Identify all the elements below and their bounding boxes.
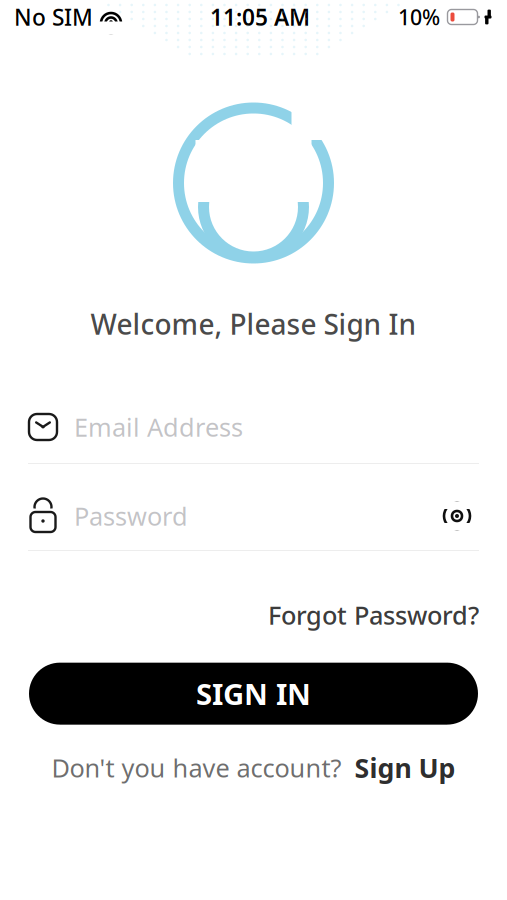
staticText: 11:05 AM xyxy=(210,2,310,32)
staticText: Welcome, Please Sign In xyxy=(90,305,416,343)
staticText: No SIM xyxy=(14,2,93,32)
staticText: Email Address xyxy=(74,410,243,444)
staticText: 10% xyxy=(398,3,440,31)
staticText: Sign Up xyxy=(354,750,455,785)
staticText: Forgot Password? xyxy=(268,598,479,632)
staticText: Password xyxy=(74,499,188,533)
button[interactable]: Forgot Password? xyxy=(268,594,479,636)
staticText: Don't you have account? xyxy=(51,751,341,784)
button[interactable]: SIGN IN xyxy=(29,663,478,725)
button[interactable]: Show password xyxy=(435,497,479,535)
staticText: SIGN IN xyxy=(196,674,311,713)
button[interactable]: Sign Up xyxy=(354,750,455,785)
